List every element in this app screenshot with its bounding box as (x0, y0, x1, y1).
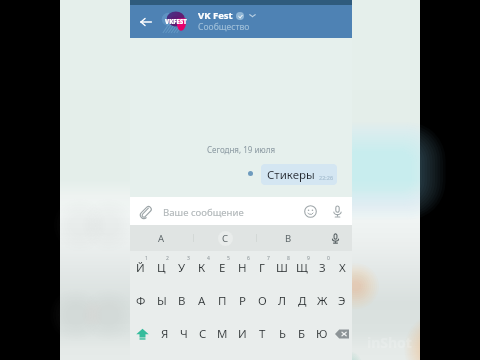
staticText: П (218, 293, 227, 309)
staticText: Р (239, 293, 246, 309)
button[interactable]: С (194, 225, 256, 251)
button[interactable]: 6 (232, 251, 252, 284)
staticText: Г (259, 260, 265, 276)
staticText: 4 (207, 255, 210, 262)
staticText: Ф (136, 293, 146, 309)
button[interactable]: Т (252, 317, 272, 350)
staticText: Сегодня, 19 июля (130, 144, 352, 155)
staticText: Ж (317, 293, 328, 309)
staticText: Х (339, 260, 346, 276)
button[interactable]: 3 (172, 251, 192, 284)
staticText: 1 (145, 255, 148, 262)
staticText: Д (298, 293, 307, 309)
button[interactable]: Back (136, 12, 156, 32)
staticText: У (178, 260, 186, 276)
button[interactable]: 5 (212, 251, 232, 284)
button[interactable]: Shift (130, 317, 155, 350)
button[interactable]: П (212, 284, 232, 317)
staticText: Л (278, 293, 287, 309)
button[interactable]: Б (292, 317, 312, 350)
button[interactable]: VK Fest avatar (164, 10, 187, 33)
button[interactable]: Voice message (326, 200, 348, 222)
button[interactable]: Д (292, 284, 312, 317)
staticText: Н (238, 260, 247, 276)
staticText: Й (136, 260, 145, 276)
staticText: О (258, 293, 267, 309)
staticText: Ш (276, 260, 288, 276)
staticText: В (285, 232, 292, 245)
button[interactable]: Attach (134, 200, 156, 222)
staticText: Ы (157, 293, 167, 309)
button[interactable]: 2 (151, 251, 172, 284)
staticText: 8 (287, 255, 290, 262)
staticText: М (217, 326, 228, 342)
button[interactable]: Ю (312, 317, 332, 350)
staticText: А (198, 293, 206, 309)
button[interactable]: В (172, 284, 192, 317)
staticText: В (178, 293, 186, 309)
staticText: Ч (180, 326, 188, 342)
staticText: А (158, 232, 165, 245)
staticText: 0 (327, 255, 330, 262)
button[interactable]: Ж (312, 284, 332, 317)
button[interactable]: О (252, 284, 272, 317)
staticText: Ь (279, 326, 286, 342)
staticText: inShot (367, 333, 412, 352)
button[interactable]: Emoji (299, 200, 321, 222)
staticText: VKFEST (165, 18, 187, 26)
button[interactable]: С (193, 317, 212, 350)
button[interactable]: Voice input (319, 225, 352, 251)
staticText: Сообщество (198, 21, 250, 33)
staticText: VK Fest (198, 9, 233, 22)
button[interactable]: 8 (272, 251, 292, 284)
button[interactable]: 7 (252, 251, 272, 284)
staticText: 2 (166, 255, 169, 262)
button[interactable]: 1 (130, 251, 151, 284)
button[interactable]: М (212, 317, 232, 350)
button[interactable]: 0 (312, 251, 332, 284)
staticText: Стикеры (267, 167, 315, 183)
button[interactable]: Р (232, 284, 252, 317)
staticText: С (222, 232, 229, 245)
staticText: 3 (187, 255, 190, 262)
button[interactable]: 9 (292, 251, 312, 284)
button[interactable]: Ч (174, 317, 193, 350)
button[interactable]: В (257, 225, 319, 251)
button[interactable]: Ф (130, 284, 151, 317)
staticText: Ваше сообщение (163, 206, 297, 219)
staticText: Щ (296, 260, 308, 276)
button[interactable]: И (232, 317, 252, 350)
staticText: Э (338, 293, 346, 309)
staticText: 5 (227, 255, 230, 262)
staticText: 22:26 (319, 174, 334, 181)
button[interactable]: Стикеры (261, 164, 337, 185)
button[interactable]: А (130, 225, 193, 251)
button[interactable]: А (192, 284, 212, 317)
staticText: 9 (307, 255, 310, 262)
staticText: Е (219, 260, 226, 276)
staticText: Б (298, 326, 306, 342)
button[interactable]: Э (332, 284, 352, 317)
staticText: Ю (316, 326, 328, 342)
button[interactable]: Л (272, 284, 292, 317)
staticText: С (199, 326, 207, 342)
button[interactable]: Backspace (332, 317, 352, 350)
staticText: Я (161, 326, 169, 342)
button[interactable]: Ь (272, 317, 292, 350)
button[interactable]: VK Fest (198, 9, 352, 34)
button[interactable]: Я (155, 317, 174, 350)
staticText: Ц (157, 260, 166, 276)
staticText: К (198, 260, 206, 276)
button[interactable]: Х (332, 251, 352, 284)
staticText: З (319, 260, 326, 276)
staticText: 7 (267, 255, 270, 262)
button[interactable]: Ы (151, 284, 172, 317)
button[interactable]: 4 (192, 251, 212, 284)
staticText: Т (259, 326, 266, 342)
staticText: И (238, 326, 247, 342)
staticText: 6 (247, 255, 250, 262)
